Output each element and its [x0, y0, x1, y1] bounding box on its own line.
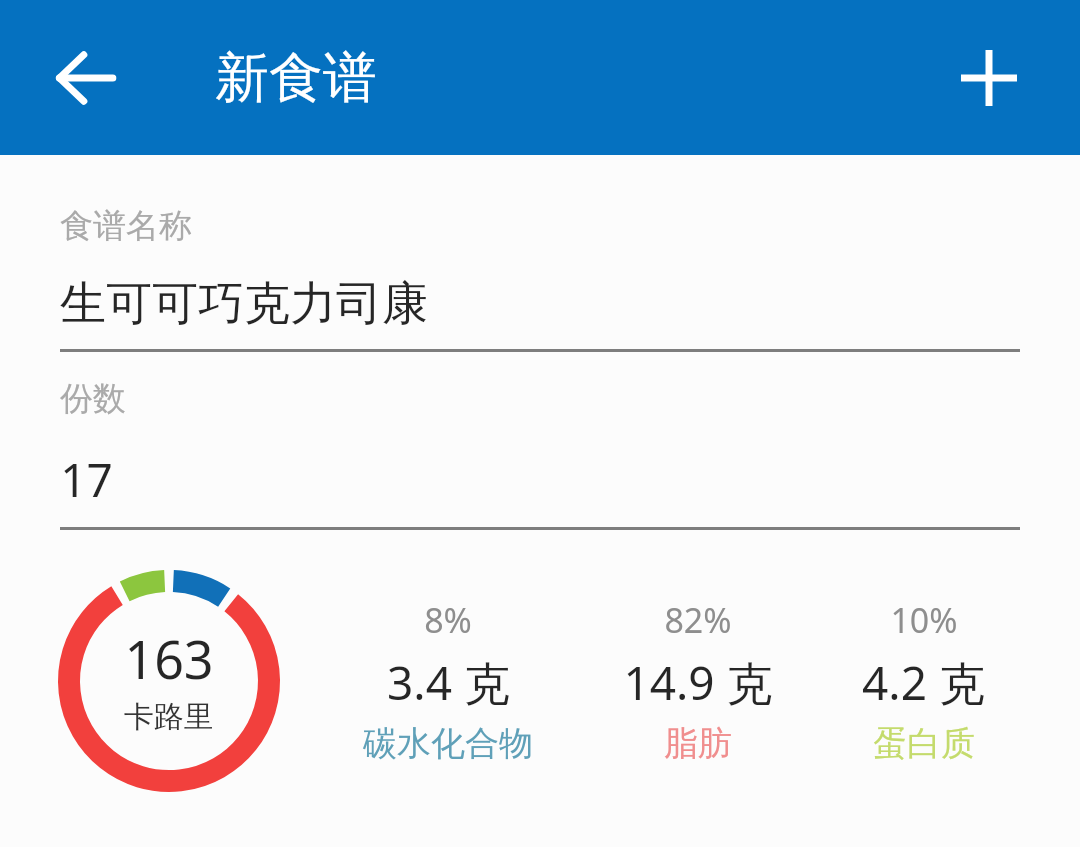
button[interactable]: Add — [934, 23, 1044, 133]
staticText: 碳水化合物 — [363, 722, 533, 765]
button[interactable]: Back — [30, 23, 140, 133]
button[interactable]: 食谱名称 — [60, 205, 1020, 352]
button[interactable]: 10% — [856, 597, 991, 765]
staticText: 食谱名称 — [60, 205, 192, 247]
staticText: 3.4 克 — [387, 651, 510, 714]
staticText: 新食谱 — [215, 44, 377, 112]
staticText: 10% — [890, 597, 958, 643]
staticText: 蛋白质 — [873, 722, 975, 765]
staticText: 4.2 克 — [862, 651, 985, 714]
button[interactable]: 82% — [617, 597, 779, 765]
staticText: 82% — [664, 597, 732, 643]
staticText: 生可可巧克力司康 — [60, 275, 428, 333]
button[interactable]: 8% — [357, 597, 539, 765]
staticText: 8% — [424, 597, 472, 643]
staticText: 份数 — [60, 378, 126, 420]
button[interactable]: 份数 — [60, 378, 1020, 530]
staticText: 脂肪 — [664, 722, 732, 765]
staticText: 卡路里 — [124, 698, 214, 736]
staticText: 17 — [60, 448, 113, 511]
staticText: 14.9 克 — [623, 651, 773, 714]
staticText: 163 — [124, 623, 214, 694]
button[interactable]: 163 calories — [58, 570, 280, 792]
